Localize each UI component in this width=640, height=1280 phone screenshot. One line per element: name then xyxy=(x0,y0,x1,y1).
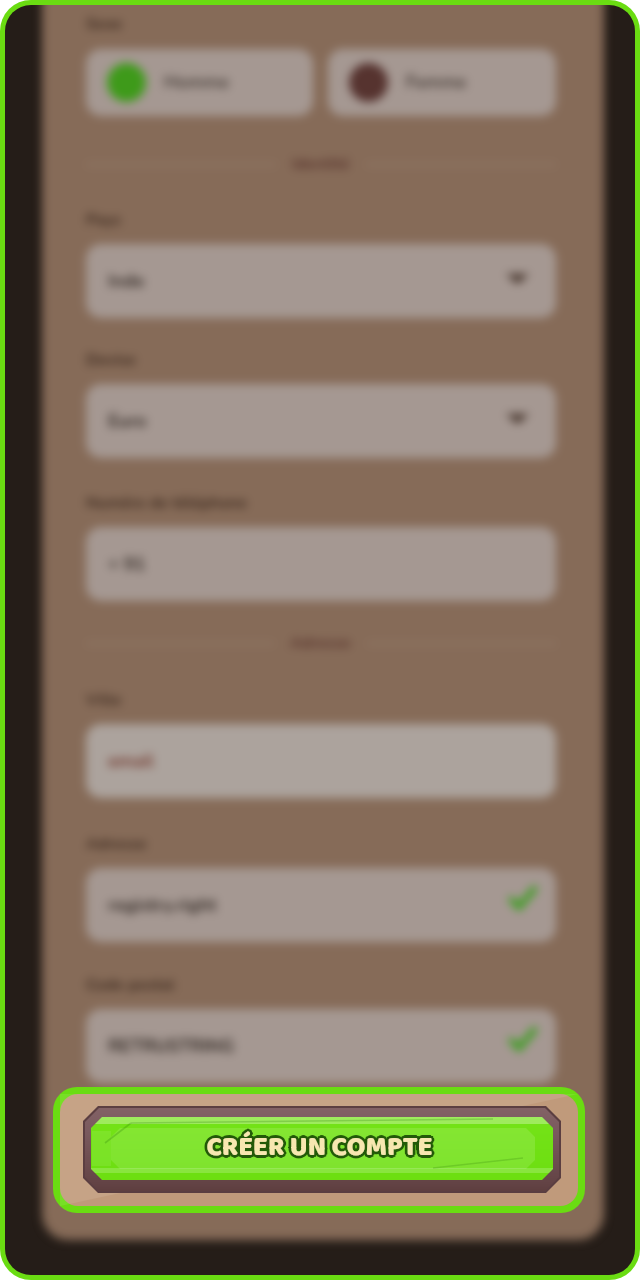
staticText: CRÉER UN COMPTE xyxy=(203,1126,430,1172)
staticText: CRÉER UN COMPTE xyxy=(209,1126,436,1172)
staticText: CRÉER UN COMPTE xyxy=(206,1126,433,1172)
staticText: CRÉER UN COMPTE xyxy=(206,1129,433,1175)
staticText: Femme xyxy=(406,70,467,95)
staticText: email xyxy=(108,749,154,774)
staticText: CRÉER UN COMPTE xyxy=(204,1128,431,1174)
button[interactable]: + 91 xyxy=(86,527,556,601)
staticText: Homme xyxy=(164,70,229,95)
button[interactable]: RETRUSTRING xyxy=(86,1009,556,1083)
staticText: + 91 xyxy=(108,552,146,577)
staticText: RETRUSTRING xyxy=(108,1034,235,1059)
staticText: Pays xyxy=(86,209,121,231)
staticText: Code postal xyxy=(86,974,175,996)
button[interactable]: Euro xyxy=(86,384,556,458)
staticText: CRÉER UN COMPTE xyxy=(204,1124,431,1170)
staticText: Adresse xyxy=(290,632,351,654)
button[interactable]: Créer un compte xyxy=(53,1087,585,1213)
staticText: Ville xyxy=(86,689,122,711)
button[interactable]: registry.right xyxy=(86,868,556,942)
button[interactable]: Femme xyxy=(328,49,556,116)
staticText: CRÉER UN COMPTE xyxy=(206,1123,433,1169)
staticText: Sexe xyxy=(86,13,122,35)
staticText: Devise xyxy=(86,349,136,371)
button[interactable]: Homme xyxy=(86,49,313,116)
staticText: registry.right xyxy=(108,893,217,918)
staticText: Euro xyxy=(108,409,147,434)
staticText: CRÉER UN COMPTE xyxy=(208,1124,435,1170)
staticText: Numéro de téléphone xyxy=(86,492,247,514)
staticText: CRÉER UN COMPTE xyxy=(208,1128,435,1174)
staticText: Identité xyxy=(292,153,350,175)
staticText: Adresse xyxy=(86,833,147,855)
button[interactable]: Inde xyxy=(86,244,556,318)
staticText: Inde xyxy=(108,269,145,294)
button[interactable]: email xyxy=(86,724,556,798)
